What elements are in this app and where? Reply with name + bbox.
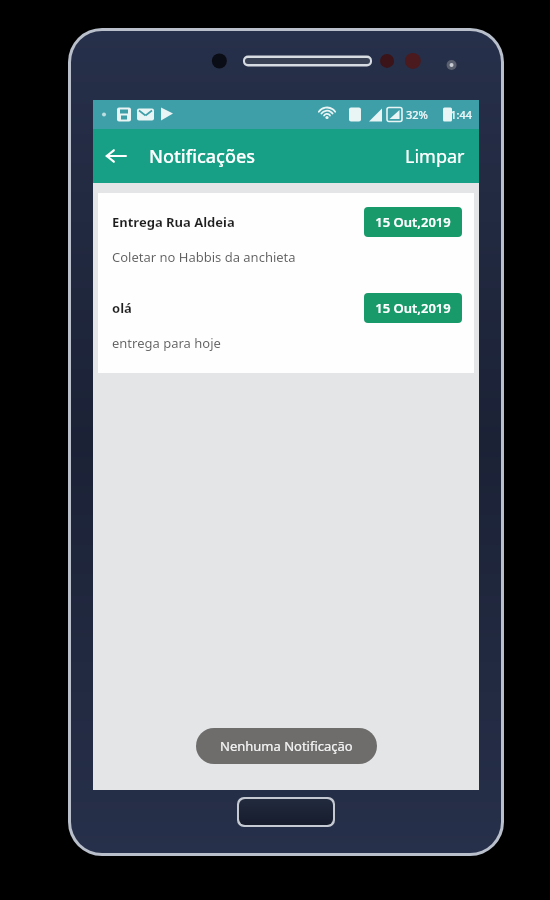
staticText: Limpar xyxy=(405,144,465,169)
button[interactable]: 15 Out,2019 xyxy=(364,207,462,237)
button[interactable]: olá xyxy=(98,279,474,365)
staticText: Coletar no Habbis da anchieta xyxy=(112,248,296,266)
staticText: Nenhuma Notificação xyxy=(220,737,353,755)
staticText: 15 Out,2019 xyxy=(375,213,451,231)
button[interactable]: Home xyxy=(237,797,335,827)
staticText: olá xyxy=(112,299,364,317)
staticText: Notificações xyxy=(149,144,256,169)
button[interactable]: Entrega Rua Aldeia xyxy=(98,193,474,279)
button[interactable]: 15 Out,2019 xyxy=(364,293,462,323)
button[interactable]: Back xyxy=(93,133,139,179)
button[interactable]: Limpar xyxy=(391,134,479,179)
button[interactable]: Nenhuma Notificação xyxy=(196,728,377,764)
staticText: Entrega Rua Aldeia xyxy=(112,213,364,231)
staticText: 21:44 xyxy=(444,107,473,122)
staticText: entrega para hoje xyxy=(112,334,221,352)
staticText: 32% xyxy=(406,107,428,122)
staticText: 15 Out,2019 xyxy=(375,299,451,317)
